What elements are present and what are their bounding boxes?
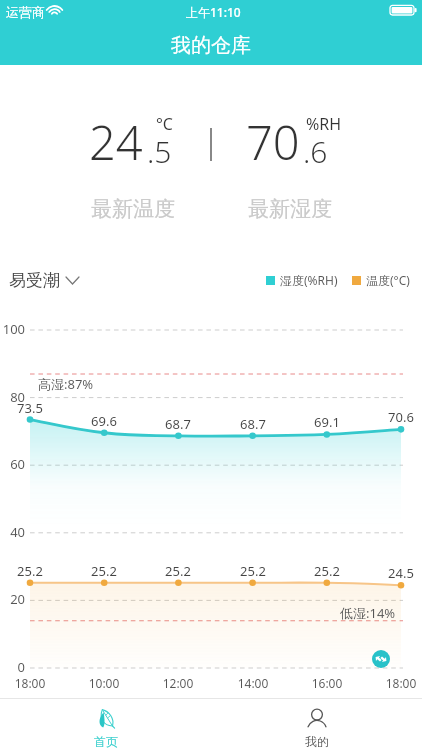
staticText: 上午11:10 <box>186 4 241 20</box>
staticText: 低湿:14% <box>340 604 396 622</box>
staticText: 40 <box>0 523 25 541</box>
staticText: 25.2 <box>307 562 347 580</box>
staticText: 14:00 <box>231 675 275 691</box>
button[interactable]: 易受潮 <box>4 266 84 295</box>
staticText: 80 <box>0 388 25 406</box>
staticText: 湿度(%RH) <box>280 272 338 288</box>
staticText: 16:00 <box>305 675 349 691</box>
staticText: 24 <box>89 110 143 174</box>
staticText: 70 <box>246 110 300 174</box>
staticText: 10:00 <box>82 675 126 691</box>
staticText: 24.5 <box>381 564 421 582</box>
staticText: 25.2 <box>84 562 124 580</box>
staticText: 69.6 <box>84 412 124 430</box>
staticText: 12:00 <box>156 675 200 691</box>
staticText: 20 <box>0 590 25 608</box>
staticText: 25.2 <box>10 562 50 580</box>
staticText: 69.1 <box>307 413 347 431</box>
staticText: 我的仓库 <box>171 33 251 58</box>
staticText: 最新温度 <box>83 196 183 222</box>
staticText: 25.2 <box>233 562 273 580</box>
staticText: 25.2 <box>158 562 198 580</box>
staticText: 60 <box>0 455 25 473</box>
staticText: 高湿:87% <box>38 375 94 393</box>
staticText: 18:00 <box>379 675 422 691</box>
staticText: 0 <box>0 658 25 676</box>
staticText: 温度(°C) <box>366 272 410 288</box>
staticText: %RH <box>306 113 342 135</box>
staticText: 我的 <box>305 734 329 749</box>
staticText: 70.6 <box>381 408 421 426</box>
staticText: 易受潮 <box>9 270 60 291</box>
staticText: 运营商 <box>6 4 45 20</box>
staticText: .6 <box>303 131 328 172</box>
staticText: 68.7 <box>158 415 198 433</box>
staticText: 68.7 <box>233 415 273 433</box>
button[interactable]: 首页 <box>0 699 211 750</box>
staticText: 73.5 <box>10 399 50 417</box>
staticText: °C <box>156 113 173 135</box>
button[interactable]: Expand chart <box>372 650 390 668</box>
button[interactable]: 我的 <box>211 699 422 750</box>
staticText: 首页 <box>94 734 118 749</box>
staticText: .5 <box>147 131 172 172</box>
staticText: 18:00 <box>8 675 52 691</box>
staticText: 最新湿度 <box>240 196 340 222</box>
staticText: 100 <box>0 320 25 338</box>
